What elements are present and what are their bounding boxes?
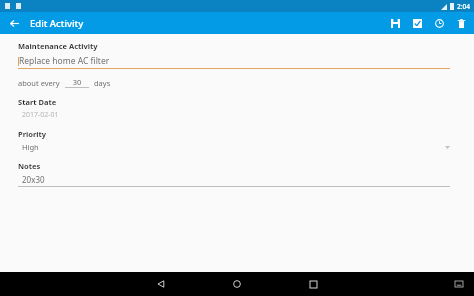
button[interactable]: Recent apps <box>303 274 323 294</box>
staticText: about every <box>18 78 60 88</box>
staticText: Edit Activity <box>30 17 84 30</box>
button[interactable]: Save <box>384 12 406 34</box>
staticText: Notes <box>18 161 41 171</box>
staticText: 20x30 <box>22 174 45 185</box>
button[interactable]: Back <box>151 274 171 294</box>
staticText: Maintenance Activity <box>18 41 98 51</box>
button[interactable]: Switch input method <box>452 277 466 291</box>
staticText: 30 <box>65 77 89 87</box>
button[interactable]: 2017-02-01 <box>18 110 450 120</box>
button[interactable]: 20x30 <box>18 174 450 187</box>
button[interactable]: High <box>18 142 450 152</box>
staticText: Replace home AC filter <box>19 55 110 67</box>
button[interactable]: Replace home AC filter <box>18 55 450 69</box>
staticText: High <box>22 142 39 152</box>
staticText: Priority <box>18 129 47 139</box>
staticText: Start Date <box>18 97 57 107</box>
staticText: 2017-02-01 <box>22 110 59 120</box>
button[interactable]: Delete <box>450 12 472 34</box>
button[interactable]: History <box>428 12 450 34</box>
button[interactable]: Home <box>227 274 247 294</box>
button[interactable]: 30 <box>65 77 89 88</box>
button[interactable]: Mark complete <box>406 12 428 34</box>
staticText: days <box>94 78 111 88</box>
button[interactable]: Navigate up <box>4 13 24 33</box>
staticText: 2:04 <box>457 2 470 11</box>
